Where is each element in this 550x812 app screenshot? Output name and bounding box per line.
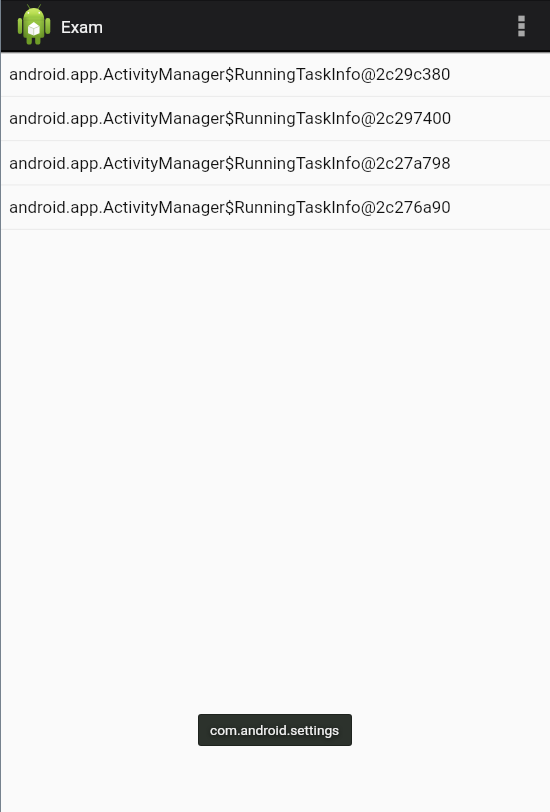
staticText: android.app.ActivityManager$RunningTaskI… xyxy=(9,108,452,128)
staticText: android.app.ActivityManager$RunningTaskI… xyxy=(9,64,451,84)
button[interactable]: android.app.ActivityManager$RunningTaskI… xyxy=(0,96,550,140)
staticText: com.android.settings xyxy=(210,722,340,738)
button[interactable]: Exam xyxy=(0,0,120,50)
button[interactable]: android.app.ActivityManager$RunningTaskI… xyxy=(0,52,550,96)
button[interactable]: android.app.ActivityManager$RunningTaskI… xyxy=(0,141,550,185)
staticText: android.app.ActivityManager$RunningTaskI… xyxy=(9,153,451,173)
staticText: android.app.ActivityManager$RunningTaskI… xyxy=(9,197,451,217)
staticText: Exam xyxy=(61,17,104,37)
button[interactable]: android.app.ActivityManager$RunningTaskI… xyxy=(0,185,550,229)
button[interactable]: More options xyxy=(493,0,550,50)
